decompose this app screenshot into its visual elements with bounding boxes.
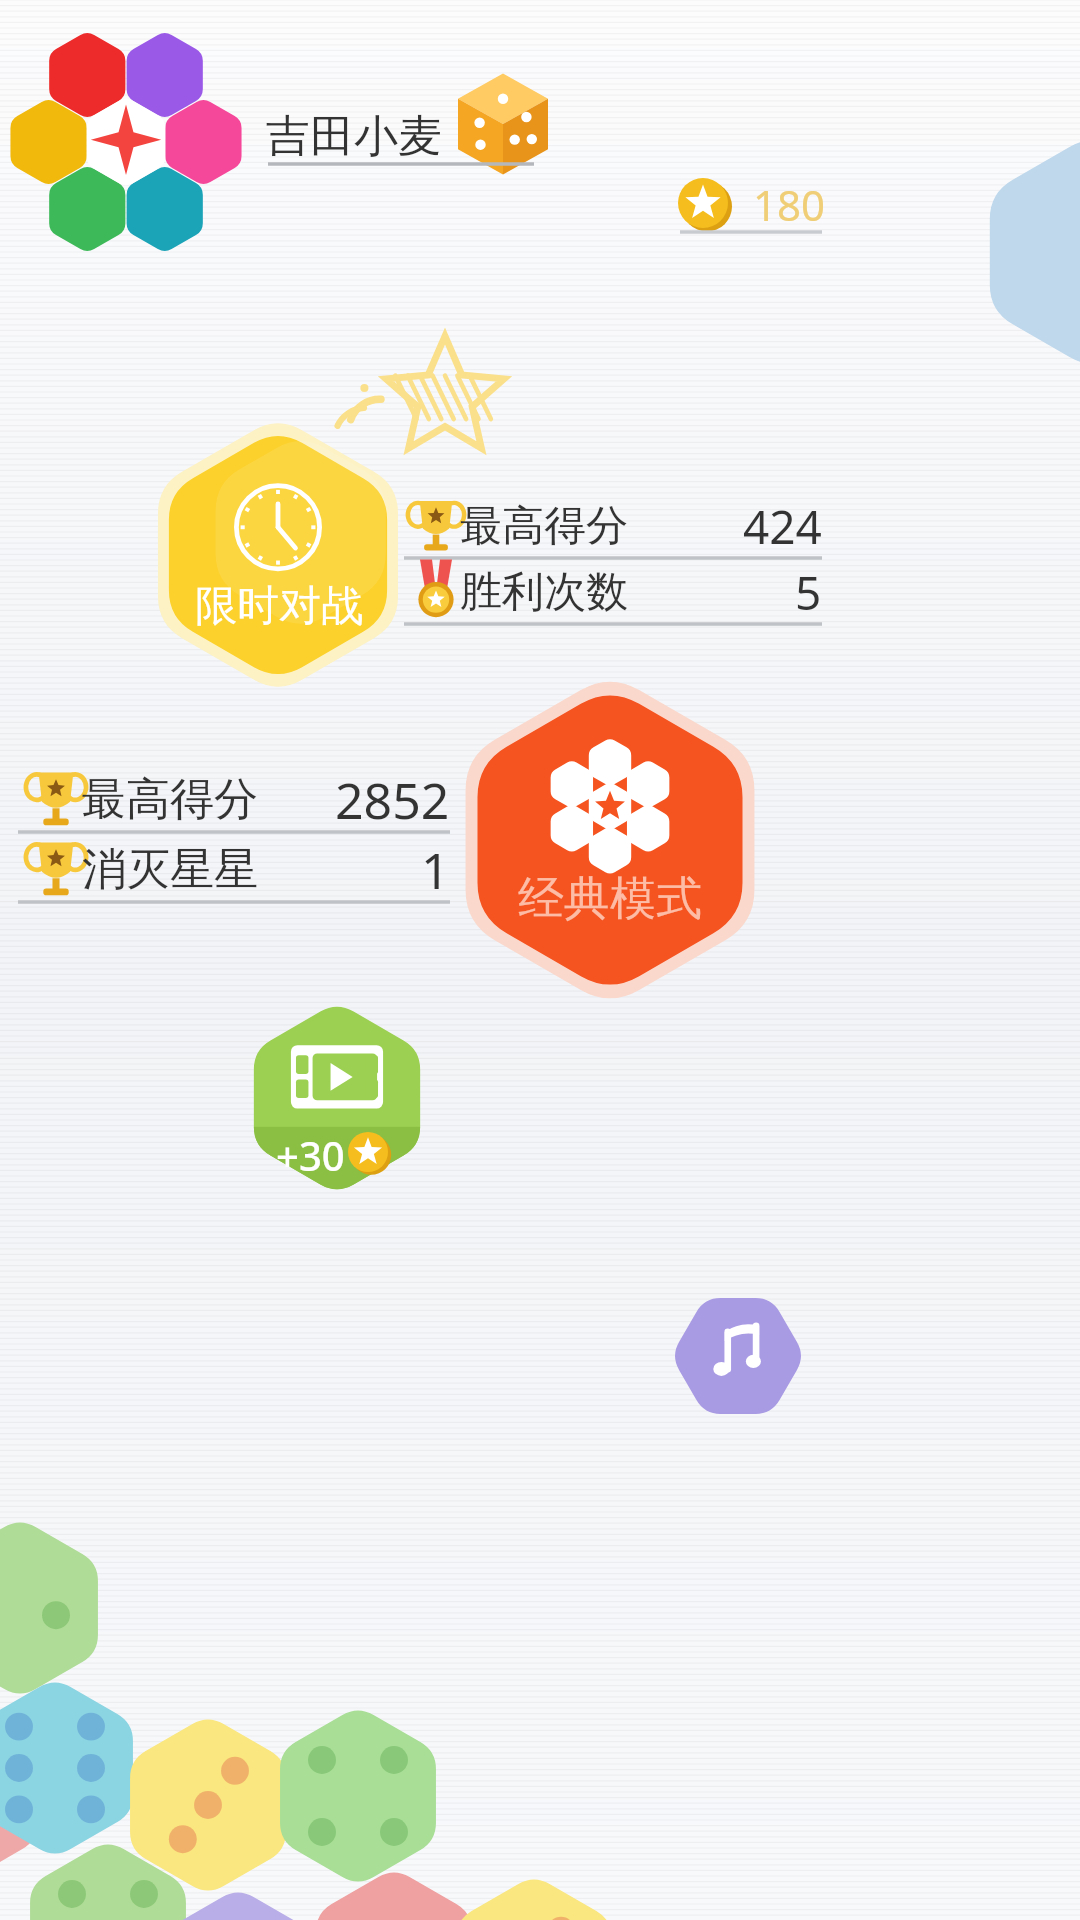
button[interactable]: 胜利次数 bbox=[460, 560, 822, 624]
button[interactable]: Roll dice bbox=[456, 74, 552, 174]
staticText: 最高得分 bbox=[460, 500, 628, 553]
staticText: +30 bbox=[276, 1128, 345, 1182]
button[interactable]: 经典模式 bbox=[455, 686, 765, 996]
staticText: 吉田小麦 bbox=[266, 109, 442, 164]
button[interactable]: 限时对战 bbox=[150, 427, 408, 685]
staticText: 180 bbox=[753, 176, 826, 233]
button[interactable]: 最高得分 bbox=[82, 766, 450, 832]
button[interactable]: +30 bbox=[240, 1000, 436, 1198]
staticText: 1 bbox=[421, 836, 450, 902]
staticText: 424 bbox=[743, 495, 822, 558]
staticText: 消灭星星 bbox=[82, 842, 258, 897]
button[interactable]: 消灭星星 bbox=[82, 836, 450, 902]
staticText: 限时对战 bbox=[195, 580, 363, 633]
staticText: 最高得分 bbox=[82, 772, 258, 827]
button[interactable]: 180 bbox=[676, 172, 826, 236]
button[interactable]: 最高得分 bbox=[460, 494, 822, 558]
staticText: 5 bbox=[795, 561, 822, 624]
button[interactable]: Music toggle bbox=[672, 1290, 804, 1422]
button[interactable]: 吉田小麦 bbox=[266, 106, 496, 166]
staticText: 经典模式 bbox=[518, 870, 702, 928]
staticText: 2852 bbox=[335, 766, 450, 832]
staticText: 胜利次数 bbox=[460, 566, 628, 619]
